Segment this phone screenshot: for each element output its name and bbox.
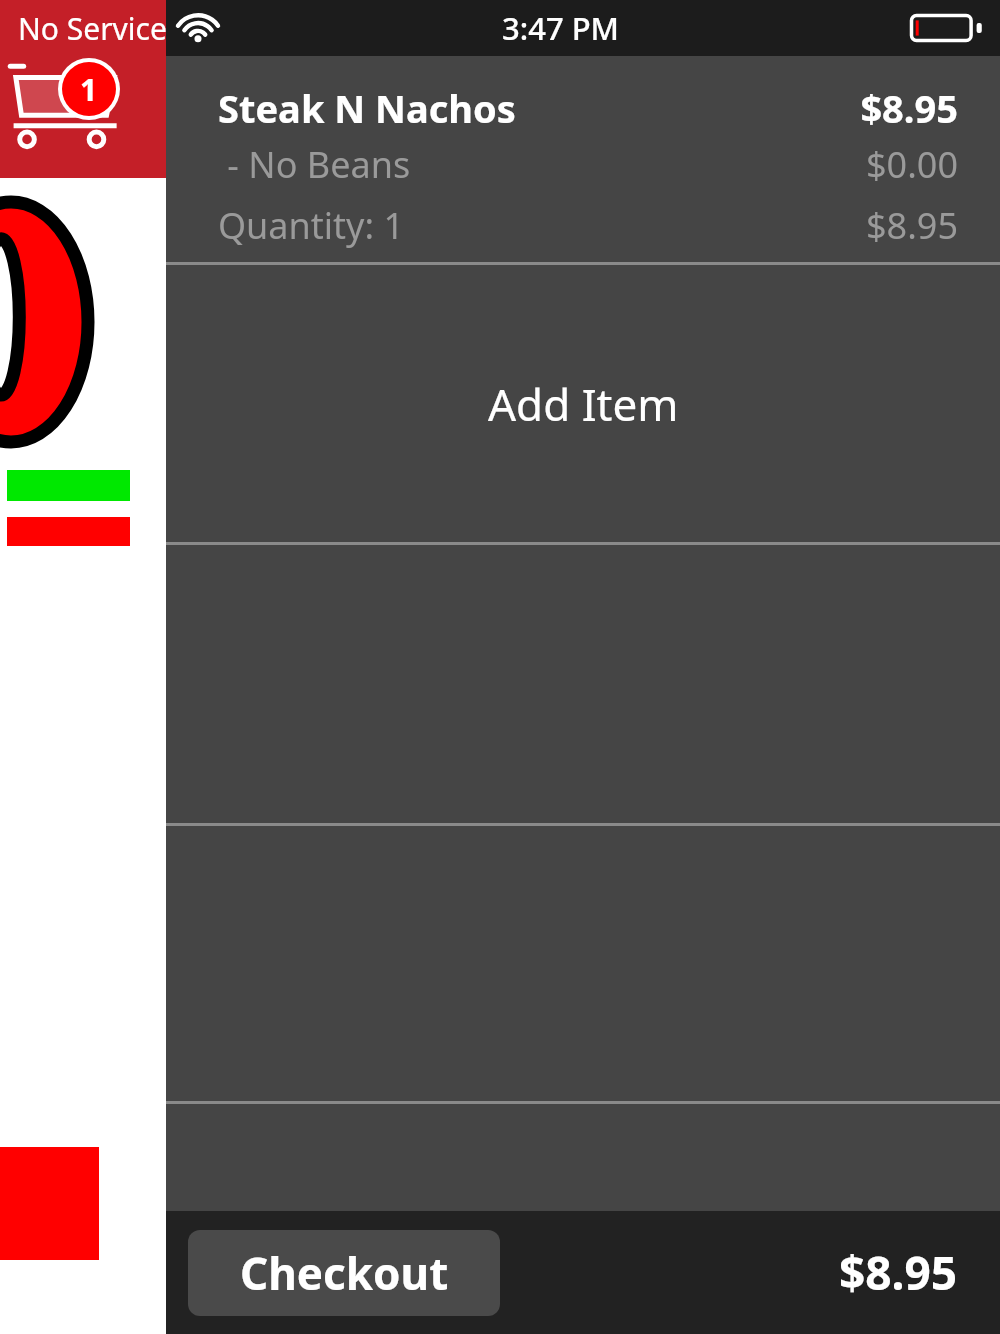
staticText: 3:47 PM xyxy=(502,7,620,49)
staticText: No Service xyxy=(18,8,167,49)
staticText: 1 xyxy=(80,69,98,110)
button[interactable]: Steak N Nachos xyxy=(166,56,1000,262)
staticText: $8.95 xyxy=(860,82,958,134)
staticText: $8.95 xyxy=(839,1241,958,1304)
staticText: Checkout xyxy=(240,1243,449,1303)
staticText: - No Beans xyxy=(218,140,411,189)
staticText: Quantity: 1 xyxy=(218,201,405,250)
button[interactable]: Checkout xyxy=(188,1230,500,1316)
staticText: Add Item xyxy=(488,374,679,434)
staticText: Steak N Nachos xyxy=(218,82,516,134)
button[interactable]: Cart, 1 item xyxy=(0,0,166,178)
staticText: $8.95 xyxy=(865,201,958,250)
button[interactable]: Add Item xyxy=(166,265,1000,542)
staticText: $0.00 xyxy=(865,140,958,189)
